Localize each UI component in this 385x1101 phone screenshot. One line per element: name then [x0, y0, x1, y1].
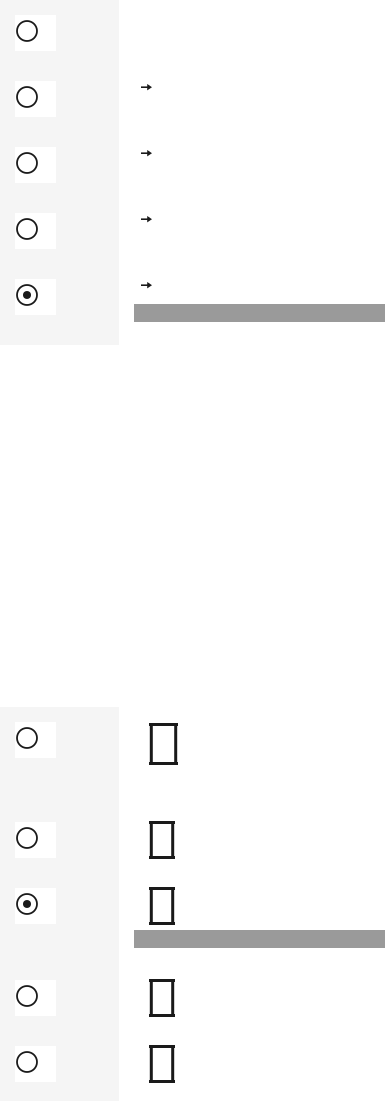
button[interactable]: Selected option	[0, 0, 385, 1101]
button[interactable]: Option	[0, 0, 385, 1101]
button[interactable]: Selected option	[0, 0, 385, 1101]
button[interactable]: Option	[0, 0, 385, 1101]
button[interactable]: Option	[0, 0, 385, 1101]
button[interactable]: Option	[0, 0, 385, 1101]
button[interactable]: Option	[0, 0, 385, 1101]
button[interactable]: Option	[0, 0, 385, 1101]
button[interactable]: Option	[0, 0, 385, 1101]
button[interactable]: Option	[0, 0, 385, 1101]
